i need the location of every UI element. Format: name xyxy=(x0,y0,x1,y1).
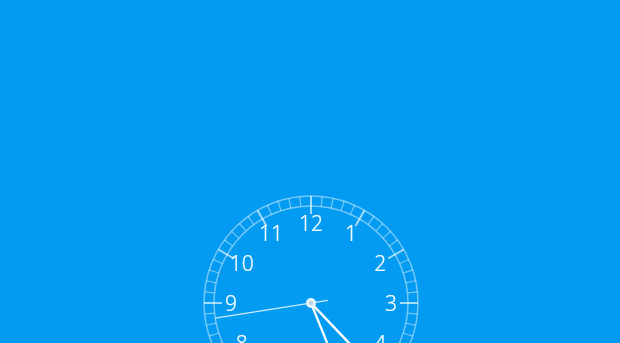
button[interactable]: Analog clock face xyxy=(0,0,620,343)
